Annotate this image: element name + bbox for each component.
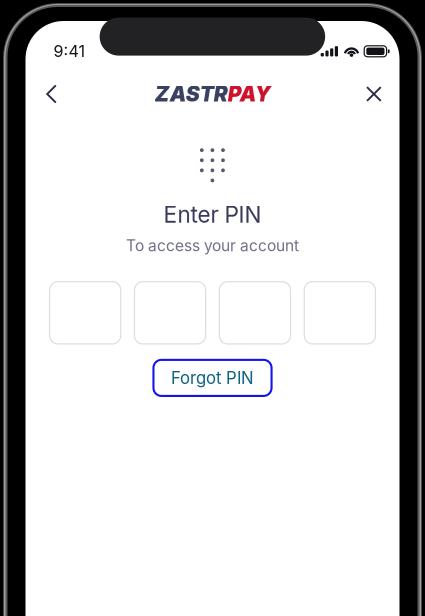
button[interactable]: Back <box>33 76 69 112</box>
button[interactable]: Forgot PIN <box>152 359 273 397</box>
staticText: 9:41 <box>53 42 85 61</box>
staticText: ZASTR <box>155 81 228 107</box>
staticText: To access your account <box>126 236 299 255</box>
staticText: PAY <box>228 81 271 107</box>
staticText: Enter PIN <box>163 201 261 228</box>
button[interactable]: Close <box>356 76 392 112</box>
staticText: Forgot PIN <box>171 368 254 388</box>
